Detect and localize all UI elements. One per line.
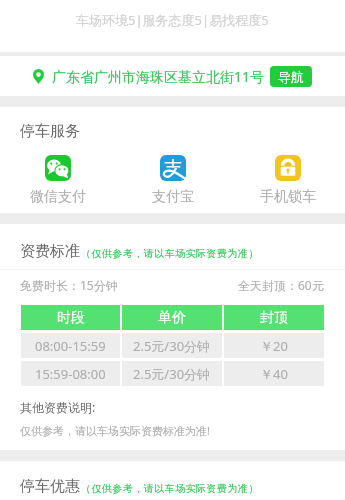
staticText: 车场环境5|服务态度5|易找程度5	[76, 11, 269, 29]
staticText: 15:59-08:00	[35, 365, 106, 383]
staticText: 手机锁车	[260, 188, 316, 206]
staticText: 其他资费说明:	[20, 399, 96, 415]
other: Lock car with phone	[275, 155, 301, 181]
staticText: 停车服务	[20, 122, 80, 141]
button[interactable]: 广东省广州市海珠区基立北街11号	[0, 56, 345, 96]
staticText: 仅供参考，请以车场实际资费标准为准!	[20, 423, 210, 438]
staticText: 单价	[158, 309, 186, 327]
button[interactable]: Alipay	[115, 155, 230, 206]
button[interactable]: WeChat Pay	[0, 155, 115, 206]
staticText: 资费标准	[20, 242, 80, 261]
staticText: 停车优惠	[20, 477, 80, 496]
button[interactable]: Lock car with phone	[230, 155, 345, 206]
other: WeChat Pay	[45, 155, 71, 181]
staticText: ￥20	[260, 337, 288, 355]
staticText: 封顶	[260, 309, 288, 327]
staticText: 08:00-15:59	[35, 337, 106, 355]
staticText: ￥40	[260, 365, 288, 383]
staticText: 2.5元/30分钟	[133, 337, 211, 355]
staticText: 支付宝	[152, 188, 194, 206]
button[interactable]: 导航	[270, 66, 312, 87]
other: Alipay	[160, 155, 186, 181]
staticText: （仅供参考，请以车场实际资费为准）	[81, 247, 259, 260]
staticText: 2.5元/30分钟	[133, 365, 211, 383]
staticText: 广东省广州市海珠区基立北街11号	[52, 67, 265, 86]
staticText: 微信支付	[30, 188, 86, 206]
staticText: 全天封顶：60元	[238, 277, 324, 293]
staticText: 导航	[278, 69, 304, 85]
staticText: （仅供参考，请以车场实际资费为准）	[81, 482, 259, 495]
staticText: 免费时长：15分钟	[20, 277, 118, 293]
staticText: 时段	[57, 309, 85, 327]
